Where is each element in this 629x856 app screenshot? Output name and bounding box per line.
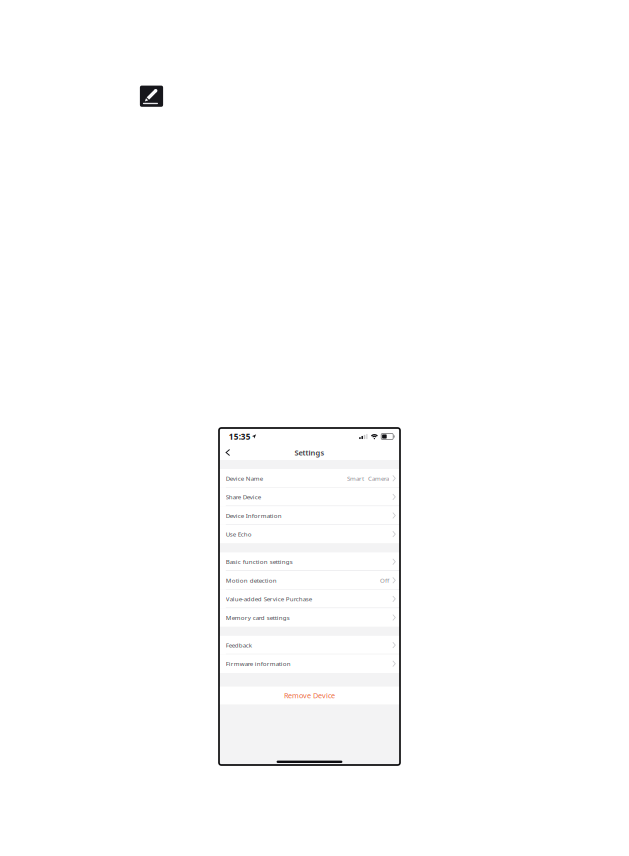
staticText: Device Name — [226, 474, 263, 482]
button[interactable]: Basic function settings — [219, 552, 400, 571]
button[interactable]: Device Name — [219, 469, 400, 488]
staticText: Use Echo — [226, 530, 252, 538]
button[interactable]: Remove Device — [219, 687, 400, 704]
staticText: Settings — [294, 447, 324, 458]
staticText: Off — [380, 576, 389, 584]
staticText: Remove Device — [284, 691, 335, 700]
button[interactable]: Use Echo — [219, 525, 400, 543]
staticText: Motion detection — [226, 576, 277, 584]
button[interactable]: Firmware information — [219, 654, 400, 673]
staticText: Device Information — [226, 511, 282, 520]
staticText: Share Device — [226, 493, 261, 501]
staticText: Basic function settings — [226, 557, 293, 566]
button[interactable]: Feedback — [219, 636, 400, 654]
staticText: 15:35 — [229, 431, 251, 442]
button[interactable]: Motion detection — [219, 571, 400, 590]
staticText: Feedback — [226, 641, 252, 649]
staticText: Value-added Service Purchase — [226, 595, 312, 603]
button[interactable]: Back — [219, 445, 237, 460]
staticText: Smart Camera — [347, 474, 389, 482]
button[interactable]: Device Information — [219, 506, 400, 525]
staticText: Firmware information — [226, 659, 291, 668]
button[interactable]: Share Device — [219, 488, 400, 506]
staticText: Memory card settings — [226, 613, 290, 622]
button[interactable]: Value-added Service Purchase — [219, 590, 400, 608]
button[interactable]: Memory card settings — [219, 608, 400, 627]
